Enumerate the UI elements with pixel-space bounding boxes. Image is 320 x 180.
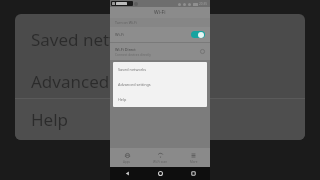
staticText: Advanced settings xyxy=(31,70,178,93)
button[interactable]: More xyxy=(177,148,210,167)
staticText: Saved networks xyxy=(31,28,158,51)
other: More xyxy=(200,49,205,54)
staticText: Advanced settings xyxy=(118,82,151,87)
button[interactable]: Wi‑Fi Direct xyxy=(110,43,210,60)
staticText: Turn on Wi‑Fi xyxy=(115,20,137,25)
staticText: Help xyxy=(118,97,127,102)
staticText: Connect devices directly xyxy=(115,53,151,57)
staticText: More xyxy=(190,160,198,164)
staticText: 20:35 xyxy=(199,2,208,6)
staticText: Help xyxy=(31,108,69,131)
button[interactable]: Advanced settings xyxy=(113,77,207,92)
staticText: Wi‑Fi scan xyxy=(153,160,168,164)
staticText: Wi‑Fi xyxy=(115,32,125,37)
button[interactable]: Apps xyxy=(110,148,144,167)
button[interactable]: Advanced settings xyxy=(15,64,305,98)
button[interactable]: Wi‑Fi xyxy=(110,27,210,42)
button[interactable]: Help xyxy=(113,92,207,107)
button[interactable]: Wi‑Fi scan xyxy=(144,148,177,167)
staticText: Saved networks xyxy=(118,67,147,72)
staticText: Apps xyxy=(123,160,131,164)
button[interactable]: Back xyxy=(110,167,144,180)
button[interactable]: Help xyxy=(15,99,305,140)
button[interactable]: Recent apps xyxy=(177,167,210,180)
other: Stop recording xyxy=(134,2,138,6)
button[interactable]: Home xyxy=(144,167,177,180)
button[interactable]: Saved networks xyxy=(113,62,207,77)
button[interactable]: Saved networks xyxy=(15,14,305,64)
staticText: Wi‑Fi xyxy=(154,9,166,16)
other: Wi-Fi on xyxy=(191,31,205,38)
staticText: Wi‑Fi Direct xyxy=(115,47,136,52)
